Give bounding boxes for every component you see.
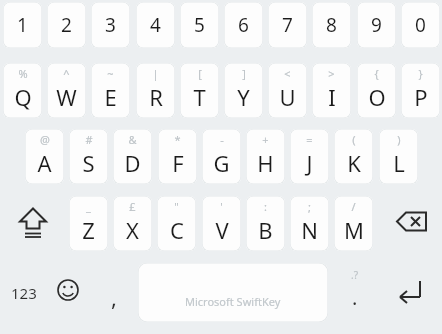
staticText: / [351,199,356,214]
staticText: + [262,132,269,147]
staticText: 9 [371,12,382,38]
staticText: 7 [282,12,293,38]
staticText: L [393,148,405,178]
button[interactable]: 7 [268,2,307,48]
staticText: ] [242,66,246,81]
button[interactable]: Emoji [48,263,88,323]
button[interactable]: 5 [180,2,219,48]
button[interactable]: ) [379,129,418,184]
staticText: Y [237,82,250,112]
staticText: . [352,284,358,311]
button[interactable]: .? [333,263,377,323]
staticText: Microsoft SwiftKey [185,294,281,309]
staticText: E [104,82,117,112]
button[interactable]: _ [69,196,108,251]
button[interactable]: } [401,63,440,118]
staticText: H [257,148,274,178]
staticText: W [56,82,77,112]
button[interactable]: Enter [382,263,442,323]
staticText: I [328,82,336,112]
staticText: ) [397,132,401,147]
button[interactable]: Microsoft SwiftKey [138,263,328,322]
staticText: G [213,148,230,178]
button[interactable]: = [290,129,329,184]
button[interactable]: ] [224,63,263,118]
button[interactable]: Backspace [382,196,442,251]
button[interactable]: & [113,129,152,184]
staticText: > [328,66,335,81]
button[interactable]: # [69,129,108,184]
staticText: ( [352,132,356,147]
staticText: [ [198,66,202,81]
staticText: S [82,148,95,178]
staticText: N [301,215,318,245]
staticText: M [344,215,364,245]
staticText: C [170,215,184,245]
button[interactable]: 123 [0,263,48,323]
button[interactable]: Shift [3,196,63,251]
staticText: _ [86,199,91,214]
staticText: Z [82,215,95,245]
staticText: K [347,148,361,178]
button[interactable]: 0 [401,2,440,48]
button[interactable]: / [334,196,373,251]
button[interactable]: " [157,196,196,251]
button[interactable]: £ [113,196,152,251]
staticText: * [174,132,181,147]
button[interactable]: 9 [357,2,396,48]
staticText: 4 [150,12,161,38]
staticText: T [193,82,206,112]
staticText: ~ [107,66,114,81]
staticText: V [215,215,229,245]
staticText: Q [14,82,32,112]
button[interactable]: 8 [312,2,351,48]
staticText: : [264,199,267,214]
button[interactable]: ; [290,196,329,251]
button[interactable]: ( [334,129,373,184]
staticText: 2 [61,12,72,38]
staticText: £ [129,199,136,214]
staticText: F [172,148,184,178]
staticText: # [85,132,93,147]
staticText: R [149,82,163,112]
button[interactable]: % [3,63,42,118]
staticText: D [124,148,141,178]
button[interactable]: ^ [47,63,86,118]
button[interactable]: [ [180,63,219,118]
staticText: B [258,215,273,245]
staticText: P [414,82,428,112]
button[interactable]: < [268,63,307,118]
staticText: @ [40,132,50,147]
staticText: J [306,148,313,178]
staticText: 123 [11,283,37,303]
staticText: 3 [105,12,116,38]
button[interactable]: 2 [47,2,86,48]
button[interactable]: { [357,63,396,118]
button[interactable]: | [136,63,175,118]
staticText: | [152,66,159,81]
button[interactable]: > [312,63,351,118]
button[interactable]: ' [202,196,241,251]
staticText: 0 [415,12,426,38]
button[interactable]: * [158,129,197,184]
button[interactable]: 1 [3,2,42,48]
staticText: " [174,199,179,214]
staticText: O [368,82,386,112]
button[interactable]: 3 [91,2,130,48]
button[interactable]: 4 [136,2,175,48]
button[interactable]: : [246,196,285,251]
staticText: & [128,132,137,147]
staticText: ' [220,199,223,214]
staticText: % [18,66,28,81]
button[interactable]: - [202,129,241,184]
staticText: 8 [326,12,337,38]
staticText: 6 [238,12,249,38]
staticText: X [126,215,139,245]
button[interactable]: ~ [91,63,130,118]
staticText: , [111,282,117,312]
button[interactable]: , [92,263,136,323]
staticText: U [279,82,296,112]
button[interactable]: + [246,129,285,184]
button[interactable]: 6 [224,2,263,48]
button[interactable]: @ [25,129,64,184]
